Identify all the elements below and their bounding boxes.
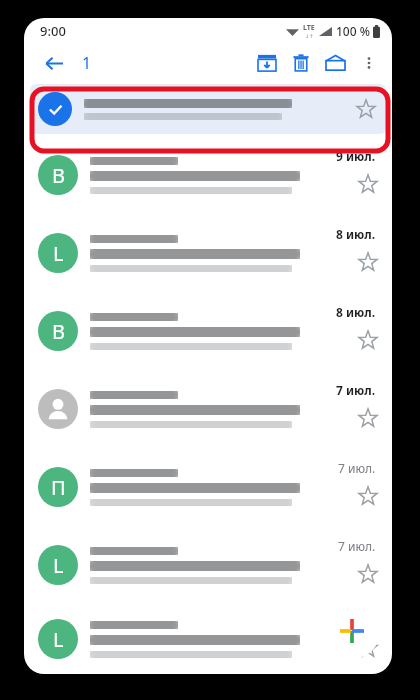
staticText: 7 июл. xyxy=(338,460,376,476)
staticText: 1 xyxy=(82,52,92,74)
staticText: ↓↑ xyxy=(305,33,314,39)
staticText: LTE xyxy=(303,23,315,33)
staticText: 8 июл. xyxy=(336,226,376,242)
button[interactable]: П xyxy=(24,448,392,526)
button[interactable]: L xyxy=(24,214,392,292)
staticText: B xyxy=(52,162,65,189)
staticText: B xyxy=(52,318,65,345)
staticText: П xyxy=(51,474,66,501)
button[interactable] xyxy=(30,84,386,134)
button[interactable]: Back xyxy=(38,48,68,78)
staticText: 9 июл. xyxy=(336,148,376,164)
staticText: 8 июл. xyxy=(336,304,376,320)
staticText: 7 июл. xyxy=(336,382,376,398)
button[interactable]: Compose xyxy=(324,603,380,659)
staticText: L xyxy=(53,626,64,653)
button[interactable]: Archive xyxy=(250,46,284,80)
button[interactable]: L xyxy=(24,526,392,604)
button[interactable]: B xyxy=(24,136,392,214)
staticText: 100 % xyxy=(336,23,370,39)
button[interactable]: Delete xyxy=(284,46,318,80)
staticText: L xyxy=(53,240,64,267)
button[interactable]: Mark as read xyxy=(318,46,352,80)
button[interactable]: L xyxy=(24,604,392,674)
staticText: L xyxy=(53,552,64,579)
button[interactable]: B xyxy=(24,292,392,370)
button[interactable]: 7 июл. xyxy=(24,370,392,448)
staticText: 9:00 xyxy=(40,22,66,40)
button[interactable]: More options xyxy=(352,46,386,80)
staticText: 7 июл. xyxy=(338,538,376,554)
